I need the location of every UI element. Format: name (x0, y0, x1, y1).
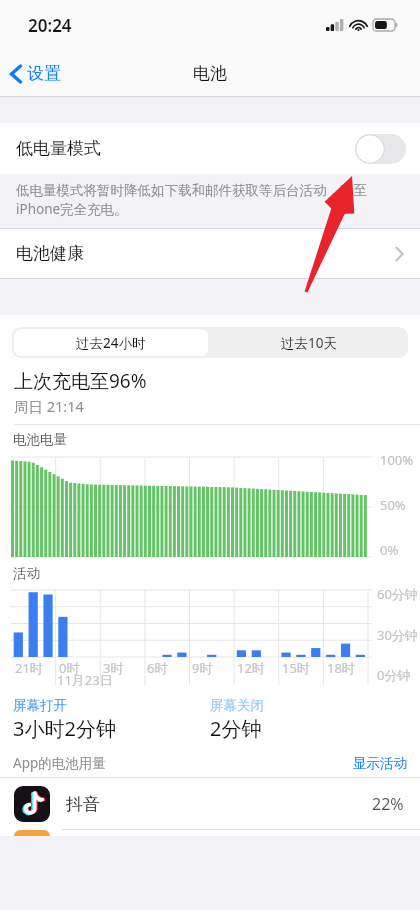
button[interactable]: 显示活动 (353, 755, 407, 772)
staticText: 50% (380, 496, 406, 514)
button[interactable]: 电池健康 (0, 229, 420, 278)
staticText: 设置 (27, 63, 61, 84)
staticText: 0时 (59, 659, 80, 677)
staticText: 抖音 (66, 794, 100, 815)
button[interactable]: 设置 (0, 57, 71, 90)
staticText: 20:24 (28, 14, 72, 37)
button[interactable]: 过去24小时 (14, 329, 208, 356)
staticText: 100% (380, 451, 414, 469)
staticText: 低电量模式 (16, 138, 101, 159)
staticText: 9时 (192, 659, 213, 677)
staticText: 12时 (237, 659, 265, 677)
staticText: 过去10天 (281, 334, 337, 352)
staticText: 6时 (147, 659, 168, 677)
button[interactable]: 低电量模式 (0, 123, 420, 174)
staticText: 电池 (193, 63, 227, 84)
staticText: 15时 (282, 659, 310, 677)
staticText: 电池电量 (13, 431, 67, 448)
staticText: 2分钟 (210, 715, 262, 742)
staticText: 周日 21:14 (14, 396, 84, 416)
staticText: 低电量模式将暂时降低如下载和邮件获取等后台活动，直至 iPhone完全充电。 (16, 181, 398, 218)
button[interactable]: 低电量模式开关 (355, 134, 406, 164)
staticText: 0% (380, 541, 399, 559)
staticText: 3小时2分钟 (13, 715, 116, 742)
staticText: 活动 (13, 565, 40, 582)
staticText: App的电池用量 (13, 754, 106, 772)
staticText: 21时 (15, 659, 43, 677)
staticText: 30分钟 (377, 626, 418, 644)
staticText: 3时 (103, 659, 124, 677)
staticText: 22% (372, 793, 404, 815)
staticText: 60分钟 (377, 585, 418, 603)
staticText: 11月23日 (57, 671, 113, 689)
staticText: 过去24小时 (76, 334, 146, 352)
staticText: 18时 (327, 659, 355, 677)
staticText: 屏幕打开 (13, 697, 67, 714)
button[interactable]: 抖音 (0, 778, 420, 830)
staticText: 电池健康 (16, 243, 84, 264)
button[interactable]: 过去10天 (210, 327, 408, 358)
staticText: 0分钟 (377, 666, 411, 684)
staticText: 屏幕关闭 (210, 697, 264, 714)
staticText: 上次充电至96% (14, 368, 147, 394)
